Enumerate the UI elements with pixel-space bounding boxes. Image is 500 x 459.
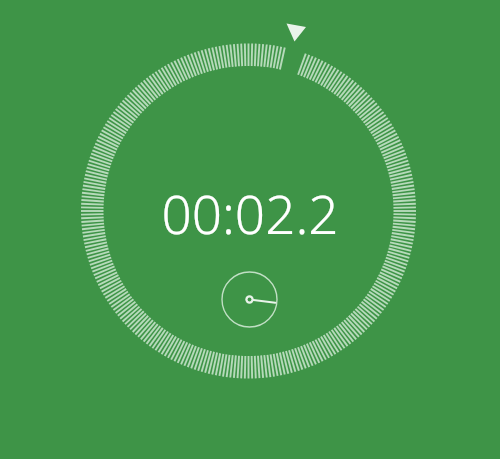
staticText: 00:02.2: [0, 177, 500, 459]
button[interactable]: Stopwatch, tap to pause: [0, 0, 500, 459]
